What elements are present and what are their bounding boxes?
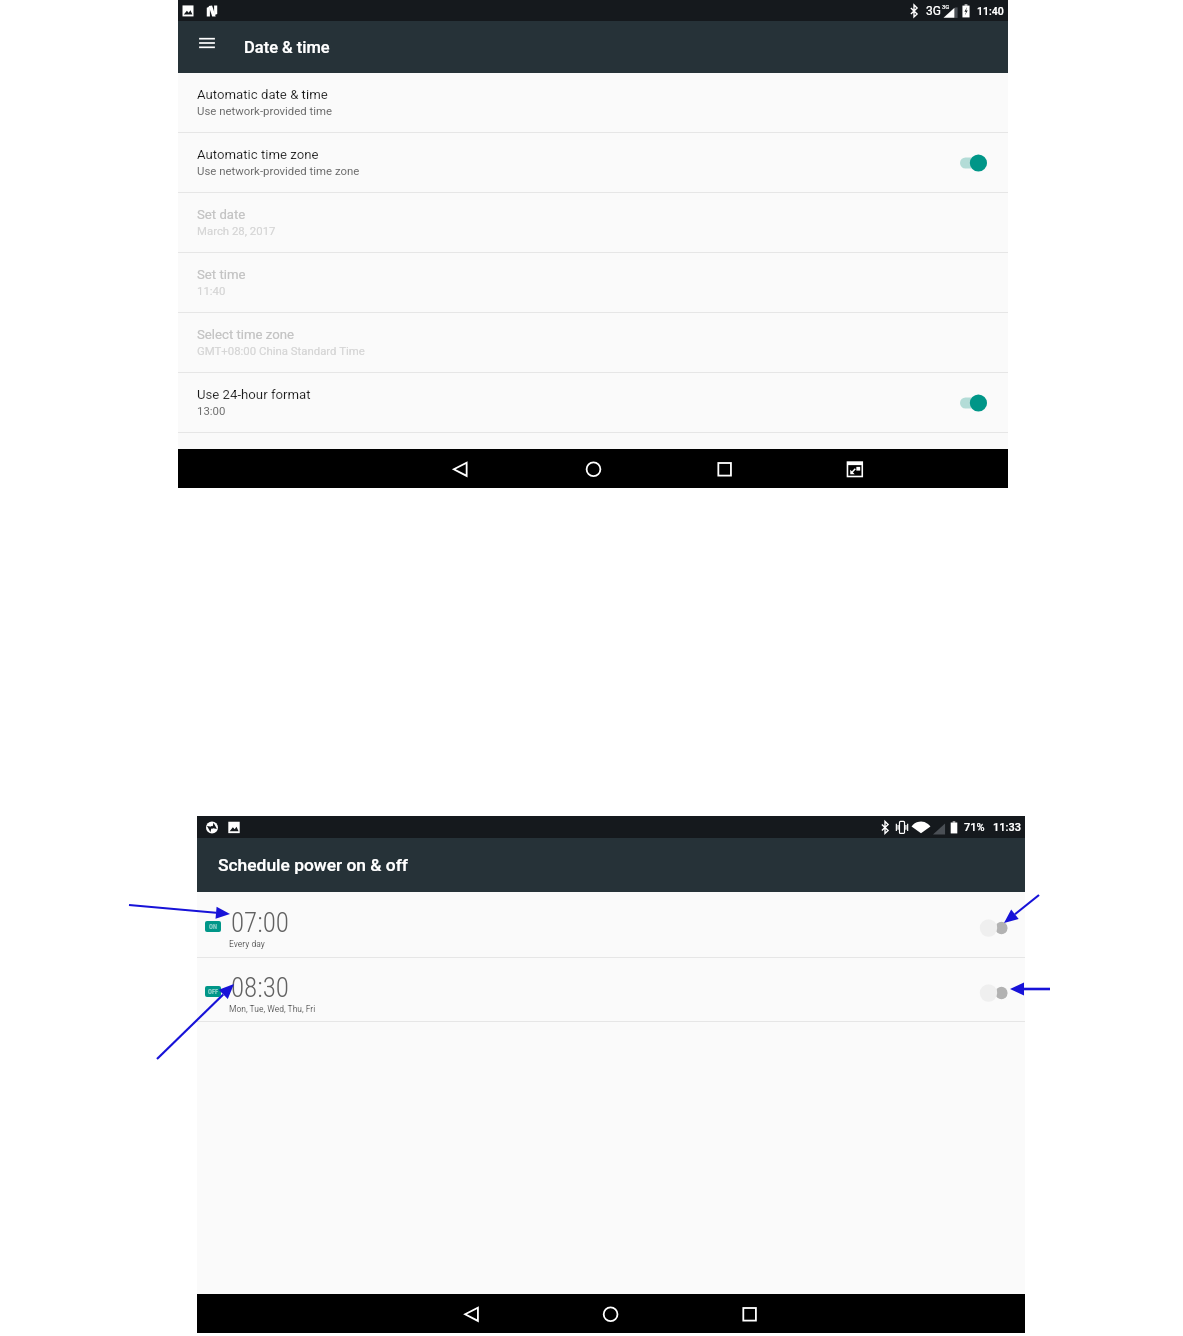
staticText: 08:30 [231,972,289,1004]
staticText: 11:40 [977,5,1004,17]
staticText: 11:40 [197,284,226,297]
staticText: Mon, Tue, Wed, Thu, Fri [229,1004,316,1014]
staticText: 3G [926,4,941,18]
staticText: Every day [229,939,265,949]
staticText: Automatic date & time [197,87,328,102]
button[interactable]: OFF [197,958,1025,1022]
button[interactable]: Toggle alarm 08:30 [979,980,1011,1006]
staticText: Automatic time zone [197,147,319,162]
staticText: ON [209,923,217,931]
button[interactable]: Toggle Automatic time zone [960,150,994,176]
button[interactable]: ON [197,892,1025,958]
staticText: 11:33 [993,821,1021,834]
staticText: Date & time [244,38,330,57]
button[interactable]: Toggle Use 24-hour format [960,390,994,416]
staticText: Use 24-hour format [197,387,311,402]
button[interactable]: Use 24-hour format [178,373,1008,433]
button[interactable]: Automatic date & time [178,73,1008,133]
button[interactable]: Toggle alarm 07:00 [979,915,1011,941]
staticText: GMT+08:00 China Standard Time [197,344,365,357]
staticText: 13:00 [197,404,226,417]
staticText: Schedule power on & off [218,855,408,875]
button[interactable]: Menu [193,29,221,57]
staticText: Set date [197,207,246,222]
staticText: Set time [197,267,246,282]
button[interactable]: Set date [178,193,1008,253]
staticText: 3G [942,3,950,10]
staticText: March 28, 2017 [197,224,276,237]
staticText: OFF [208,988,219,996]
button[interactable]: Automatic time zone [178,133,1008,193]
staticText: Use network-provided time [197,104,333,117]
staticText: 07:00 [231,907,289,939]
staticText: 71% [964,821,985,834]
staticText: Select time zone [197,327,295,342]
button[interactable]: Set time [178,253,1008,313]
staticText: Use network-provided time zone [197,164,360,177]
button[interactable]: Select time zone [178,313,1008,373]
